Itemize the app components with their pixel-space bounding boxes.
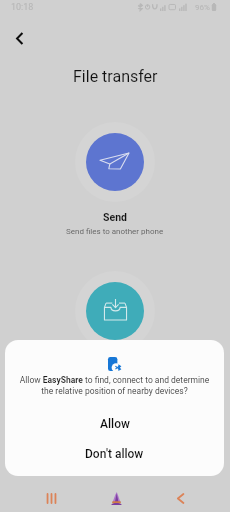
button[interactable]: Back — [166, 484, 194, 512]
button[interactable]: Home — [102, 484, 130, 512]
button[interactable]: Don't allow — [5, 439, 224, 469]
staticText: Don't allow — [85, 447, 144, 461]
button[interactable]: Back — [5, 24, 34, 53]
button[interactable]: Receive — [75, 271, 155, 351]
staticText: 96% — [195, 3, 210, 12]
staticText: File transfer — [73, 67, 158, 86]
button[interactable]: Recent apps — [37, 484, 65, 512]
staticText: Send files to another phone — [66, 227, 164, 236]
button[interactable]: Send — [75, 122, 155, 202]
button[interactable]: Allow — [5, 409, 224, 439]
staticText: Allow — [100, 417, 130, 431]
staticText: Allow EasyShare to find, connect to and … — [15, 375, 214, 396]
staticText: 10:18 — [11, 2, 34, 13]
staticText: Send — [103, 211, 127, 223]
